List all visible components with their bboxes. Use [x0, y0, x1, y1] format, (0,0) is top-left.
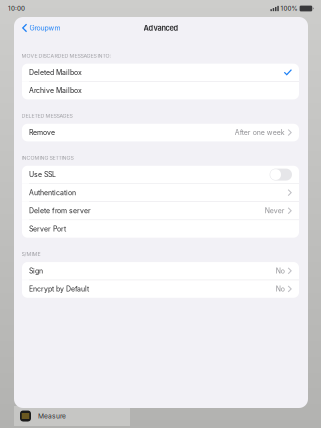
staticText: Measure: [38, 412, 66, 420]
staticText: Authentication: [29, 188, 76, 197]
staticText: 10:00: [8, 5, 25, 12]
staticText: Sign: [29, 267, 43, 275]
button[interactable]: Server Port: [22, 220, 299, 238]
button[interactable]: Groupwm: [14, 21, 66, 35]
staticText: Deleted Mailbox: [29, 68, 82, 77]
button[interactable]: Archive Mailbox: [22, 82, 299, 99]
staticText: Groupwm: [29, 24, 60, 32]
button[interactable]: Use SSL: [22, 166, 299, 183]
staticText: Advanced: [143, 24, 178, 32]
button[interactable]: Sign: [22, 262, 299, 280]
staticText: Server Port: [29, 225, 66, 233]
staticText: No: [276, 285, 285, 293]
staticText: S/MIME: [21, 251, 40, 257]
staticText: INCOMING SETTINGS: [21, 155, 73, 161]
staticText: Use SSL: [29, 170, 56, 179]
staticText: Encrypt by Default: [29, 285, 89, 293]
staticText: No: [276, 267, 285, 275]
button[interactable]: Deleted Mailbox: [22, 64, 299, 81]
button[interactable]: Authentication: [22, 184, 299, 201]
staticText: 100%: [280, 5, 297, 12]
staticText: DELETED MESSAGES: [21, 113, 72, 119]
button[interactable]: Encrypt by Default: [22, 280, 299, 298]
staticText: Remove: [29, 128, 55, 137]
button[interactable]: Measure: [14, 406, 130, 426]
staticText: Archive Mailbox: [29, 86, 82, 95]
staticText: Delete from server: [29, 207, 91, 215]
button[interactable]: Remove: [22, 124, 299, 141]
button[interactable]: Delete from server: [22, 202, 299, 220]
staticText: After one week: [235, 128, 285, 137]
staticText: Never: [265, 207, 285, 215]
staticText: MOVE DISCARDED MESSAGES INTO:: [21, 53, 110, 59]
